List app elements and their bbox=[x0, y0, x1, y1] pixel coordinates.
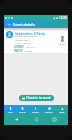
button[interactable]: September 4 Party bbox=[4, 31, 68, 53]
staticText: organizer@example.com bbox=[15, 35, 38, 38]
staticText: INVITE bbox=[14, 49, 23, 53]
staticText: PEOPLE bbox=[32, 111, 39, 114]
button[interactable]: SHARE bbox=[25, 50, 33, 53]
staticText: 12:30 bbox=[59, 16, 67, 20]
button[interactable]: Home bbox=[33, 116, 39, 122]
button[interactable]: MORE bbox=[55, 105, 68, 114]
button[interactable]: Back bbox=[6, 21, 12, 27]
staticText: Thursday, Sept 4 bbox=[15, 39, 30, 42]
staticText: EVENTS bbox=[19, 111, 26, 114]
button[interactable]: EVENTS bbox=[16, 105, 29, 114]
button[interactable]: Check in to event bbox=[19, 95, 54, 101]
staticText: Check in to event bbox=[26, 96, 51, 100]
button[interactable]: PEOPLE bbox=[29, 105, 42, 114]
button[interactable]: NO bbox=[31, 46, 35, 49]
button[interactable]: GOING? bbox=[14, 45, 24, 49]
button[interactable]: YES bbox=[26, 46, 30, 49]
staticText: SHARE bbox=[25, 50, 33, 53]
staticText: Event details bbox=[13, 22, 35, 27]
staticText: FEED bbox=[8, 111, 13, 114]
staticText: NO bbox=[31, 46, 35, 49]
staticText: YES bbox=[26, 46, 30, 49]
staticText: September 4 Party bbox=[15, 31, 46, 36]
button[interactable]: PHOTOS bbox=[42, 105, 55, 114]
staticText: PHOTOS bbox=[45, 111, 53, 114]
staticText: MORE bbox=[59, 111, 65, 114]
button[interactable]: FEED bbox=[4, 105, 16, 114]
button[interactable]: INVITE bbox=[14, 49, 23, 53]
button[interactable]: Back bbox=[13, 116, 19, 122]
staticText: GOING? bbox=[14, 45, 24, 49]
staticText: 2 going bbox=[58, 43, 66, 46]
staticText: 7:00 PM - 9:00 PM bbox=[15, 42, 31, 45]
button[interactable]: Recent apps bbox=[51, 116, 57, 122]
